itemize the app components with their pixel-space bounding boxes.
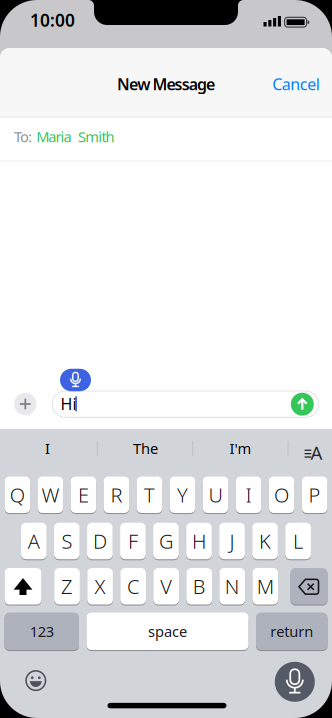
staticText: R xyxy=(110,481,122,508)
staticText: space xyxy=(148,622,187,641)
button[interactable]: 123 xyxy=(4,611,79,651)
button[interactable]: H xyxy=(186,522,212,560)
button[interactable]: Z xyxy=(54,567,80,605)
button[interactable]: V xyxy=(153,567,179,605)
button[interactable]: M xyxy=(252,567,278,605)
staticText: I'm xyxy=(229,439,251,458)
staticText: A xyxy=(310,440,322,465)
button[interactable]: R xyxy=(104,476,129,514)
staticText: K xyxy=(259,528,271,554)
staticText: 123 xyxy=(30,622,54,641)
button[interactable] xyxy=(14,393,37,415)
staticText: W xyxy=(41,481,59,508)
staticText: S xyxy=(61,528,72,554)
staticText: To: xyxy=(14,127,32,146)
staticText: N xyxy=(225,573,240,600)
staticText: P xyxy=(309,481,321,508)
staticText: G xyxy=(159,528,173,554)
button[interactable]: A xyxy=(299,442,325,462)
staticText: Maria xyxy=(36,127,72,146)
button[interactable]: space xyxy=(86,611,248,651)
staticText: D xyxy=(93,528,107,554)
button[interactable]: I'm xyxy=(195,433,285,463)
staticText: M xyxy=(257,573,274,600)
button[interactable]: K xyxy=(252,522,278,560)
button[interactable] xyxy=(275,662,315,702)
button[interactable] xyxy=(290,567,327,605)
button[interactable]: N xyxy=(219,567,245,605)
button[interactable] xyxy=(291,393,314,416)
staticText: I xyxy=(246,481,252,508)
button[interactable]: X xyxy=(87,567,113,605)
staticText: New Message xyxy=(117,73,215,95)
button[interactable] xyxy=(60,369,91,391)
button[interactable]: O xyxy=(269,476,294,514)
button[interactable]: W xyxy=(37,476,63,514)
button[interactable]: D xyxy=(87,522,113,560)
staticText: The xyxy=(133,439,158,458)
staticText: F xyxy=(128,528,138,554)
button[interactable]: I xyxy=(3,433,93,463)
button[interactable]: The xyxy=(100,433,190,463)
button[interactable] xyxy=(4,567,41,605)
button[interactable]: U xyxy=(203,476,228,514)
button[interactable]: Q xyxy=(4,476,30,514)
button[interactable]: P xyxy=(302,476,327,514)
button[interactable] xyxy=(26,671,45,690)
staticText: Q xyxy=(10,481,25,508)
button[interactable]: G xyxy=(153,522,179,560)
staticText: Z xyxy=(61,573,73,600)
staticText: Y xyxy=(177,481,188,508)
button[interactable]: C xyxy=(120,567,146,605)
staticText: Cancel xyxy=(272,73,320,95)
staticText: J xyxy=(229,528,234,554)
staticText: A xyxy=(28,528,40,554)
button[interactable]: I xyxy=(236,476,261,514)
button[interactable]: T xyxy=(137,476,162,514)
staticText: X xyxy=(95,573,106,600)
staticText: C xyxy=(127,573,139,600)
button[interactable]: B xyxy=(186,567,212,605)
button[interactable]: L xyxy=(285,522,311,560)
staticText: O xyxy=(274,481,289,508)
button[interactable]: E xyxy=(71,476,96,514)
button[interactable]: Cancel xyxy=(272,73,320,95)
button[interactable]: Hi xyxy=(52,391,319,417)
staticText: I xyxy=(45,439,50,458)
staticText: return xyxy=(270,622,313,641)
button[interactable]: F xyxy=(120,522,146,560)
staticText: 10:00 xyxy=(30,8,75,31)
staticText: H xyxy=(192,528,206,554)
button[interactable]: S xyxy=(54,522,80,560)
staticText: Smith xyxy=(78,127,114,146)
button[interactable]: A xyxy=(21,522,47,560)
button[interactable]: return xyxy=(256,611,327,651)
button[interactable]: Y xyxy=(170,476,195,514)
staticText: Hi xyxy=(60,393,76,414)
button[interactable]: J xyxy=(219,522,245,560)
staticText: V xyxy=(160,573,172,600)
staticText: L xyxy=(293,528,303,554)
staticText: T xyxy=(144,481,155,508)
staticText: B xyxy=(193,573,206,600)
button[interactable]: To: xyxy=(0,114,332,158)
staticText: E xyxy=(78,481,89,508)
staticText: U xyxy=(208,481,222,508)
